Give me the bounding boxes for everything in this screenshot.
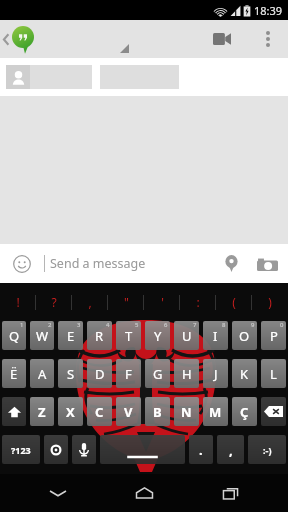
button[interactable]: Y	[145, 321, 170, 350]
button[interactable]: U	[174, 321, 199, 350]
button[interactable]: "	[108, 283, 144, 321]
button[interactable]: Ë	[2, 359, 26, 388]
staticText: M	[209, 403, 222, 421]
button[interactable]: ,	[72, 283, 108, 321]
staticText: Y	[154, 327, 162, 345]
button[interactable]: )	[252, 283, 288, 321]
staticText: Ë	[10, 365, 18, 383]
button[interactable]: Home	[116, 474, 172, 512]
button[interactable]: I	[203, 321, 228, 350]
button[interactable]: ,	[217, 435, 244, 464]
button[interactable]: Ç	[232, 397, 257, 426]
button[interactable]: Space	[100, 435, 185, 464]
staticText: H	[182, 365, 192, 383]
button[interactable]: ?123	[2, 435, 40, 464]
button[interactable]: T	[116, 321, 141, 350]
staticText: "	[124, 294, 129, 310]
button[interactable]: C	[87, 397, 112, 426]
button[interactable]: .	[189, 435, 213, 464]
staticText: :-)	[263, 444, 272, 456]
button[interactable]: Q	[2, 321, 26, 350]
button[interactable]: S	[58, 359, 83, 388]
staticText: J	[214, 365, 218, 383]
button[interactable]: Back	[1, 20, 37, 58]
button[interactable]: P	[261, 321, 286, 350]
button[interactable]: Insert emoji	[0, 244, 44, 283]
staticText: ,	[229, 441, 233, 459]
staticText: K	[240, 365, 249, 383]
staticText: 2	[48, 321, 52, 329]
button[interactable]: Take photo	[246, 244, 288, 283]
staticText: 6	[164, 321, 168, 329]
button[interactable]: A	[30, 359, 54, 388]
staticText: X	[66, 403, 75, 421]
button[interactable]: Settings	[44, 435, 68, 464]
staticText: :	[196, 294, 200, 310]
button[interactable]: M	[203, 397, 228, 426]
staticText: I	[213, 327, 218, 345]
staticText: ?123	[11, 444, 31, 456]
button[interactable]: Shift	[2, 397, 26, 426]
button[interactable]: Hide keyboard	[30, 474, 86, 512]
button[interactable]: W	[30, 321, 54, 350]
staticText: C	[95, 403, 104, 421]
staticText: G	[153, 365, 163, 383]
button[interactable]: O	[232, 321, 257, 350]
staticText: Q	[9, 327, 20, 345]
staticText: .	[199, 441, 203, 459]
staticText: R	[95, 327, 104, 345]
button[interactable]: Z	[30, 397, 54, 426]
button[interactable]: J	[203, 359, 228, 388]
staticText: 9	[251, 321, 255, 329]
staticText: N	[181, 403, 192, 421]
button[interactable]: ?	[36, 283, 72, 321]
staticText: Ç	[240, 403, 249, 421]
staticText: 1	[20, 321, 24, 329]
staticText: !	[16, 294, 20, 310]
button[interactable]: F	[116, 359, 141, 388]
button[interactable]: R	[87, 321, 112, 350]
staticText: ?	[51, 294, 57, 310]
staticText: A	[38, 365, 47, 383]
button[interactable]: !	[0, 283, 36, 321]
button[interactable]: :	[180, 283, 216, 321]
button[interactable]: (	[216, 283, 252, 321]
staticText: 5	[135, 321, 139, 329]
button[interactable]: X	[58, 397, 83, 426]
staticText: L	[270, 365, 277, 383]
staticText: 0	[280, 321, 284, 329]
button[interactable]: L	[261, 359, 286, 388]
staticText: (	[232, 294, 236, 310]
button[interactable]: '	[144, 283, 180, 321]
staticText: W	[36, 327, 49, 345]
staticText: 8	[222, 321, 226, 329]
staticText: S	[67, 365, 75, 383]
button[interactable]: N	[174, 397, 199, 426]
staticText: )	[268, 294, 272, 310]
button[interactable]: E	[58, 321, 83, 350]
staticText: T	[125, 327, 133, 345]
button[interactable]: Voice input	[72, 435, 96, 464]
staticText: V	[124, 403, 133, 421]
staticText: F	[125, 365, 132, 383]
button[interactable]: H	[174, 359, 199, 388]
button[interactable]: K	[232, 359, 257, 388]
button[interactable]: Backspace	[261, 397, 286, 426]
staticText: 3	[77, 321, 81, 329]
button[interactable]: B	[145, 397, 170, 426]
staticText: P	[270, 327, 278, 345]
button[interactable]: G	[145, 359, 170, 388]
button[interactable]: D	[87, 359, 112, 388]
staticText: D	[95, 365, 105, 383]
button[interactable]: More options	[252, 20, 284, 58]
button[interactable]: Recent apps	[202, 474, 258, 512]
staticText: ,	[88, 294, 92, 310]
staticText: '	[161, 294, 164, 310]
staticText: Send a message	[50, 255, 146, 272]
staticText: 18:39	[254, 3, 283, 18]
button[interactable]: Video call	[203, 20, 240, 58]
staticText: O	[239, 327, 250, 345]
button[interactable]: V	[116, 397, 141, 426]
button[interactable]: Share location	[216, 244, 246, 283]
button[interactable]: :-)	[248, 435, 286, 464]
